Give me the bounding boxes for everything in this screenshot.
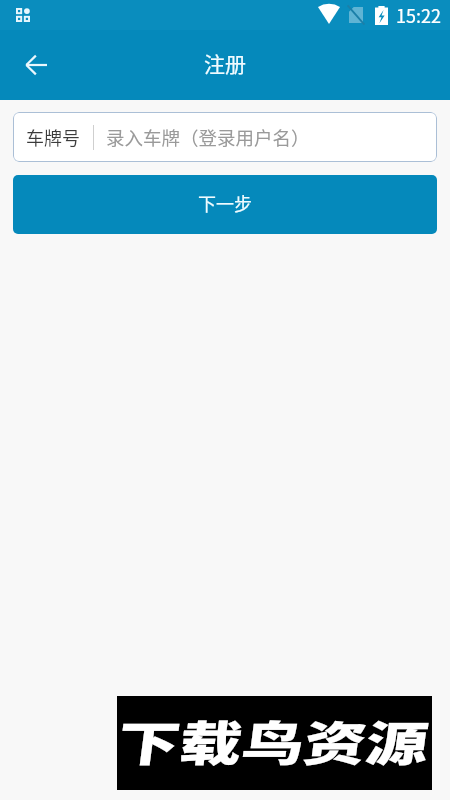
staticText: 录入车牌（登录用户名） [106,124,310,151]
button[interactable]: 下一步 [13,175,437,234]
staticText: 下一步 [198,190,252,216]
staticText: 15:22 [396,2,441,28]
staticText: 车牌号 [26,124,80,150]
button[interactable]: 车牌号 [13,112,437,162]
staticText: 注册 [204,48,246,78]
button[interactable]: Back [11,40,61,90]
staticText: 下载鸟资源 [114,706,424,774]
